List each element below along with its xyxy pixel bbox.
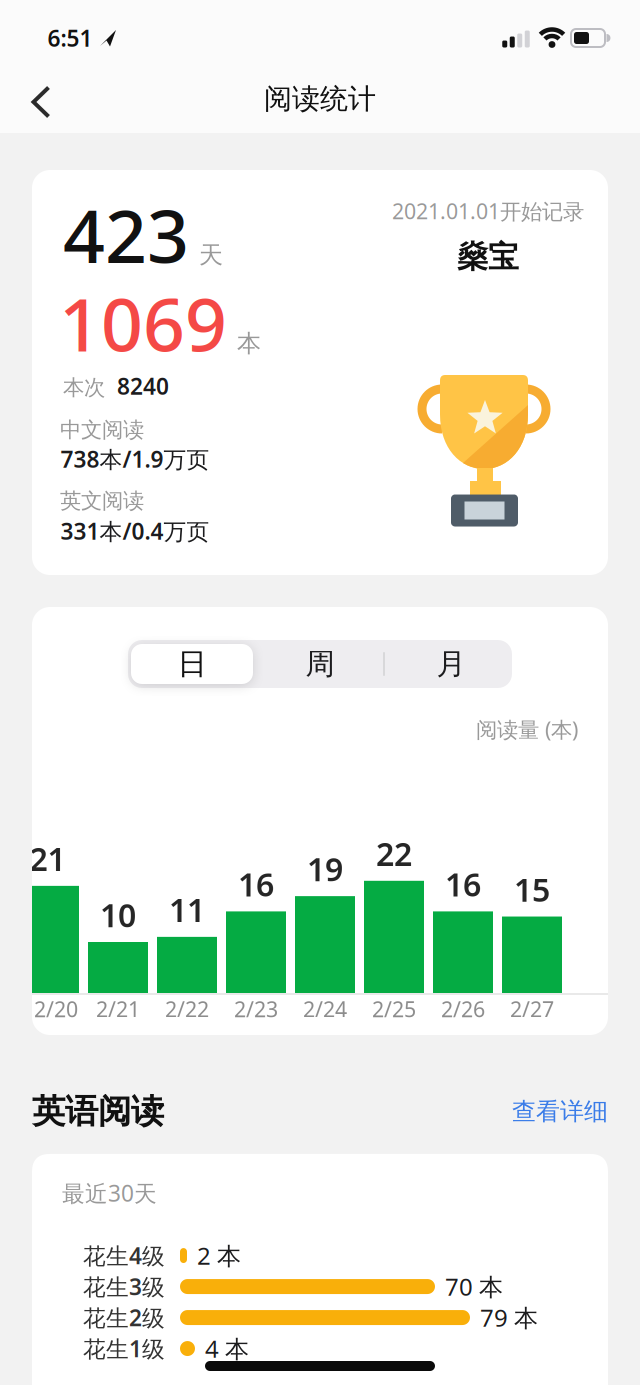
staticText: 2 本 xyxy=(197,1240,241,1271)
staticText: 周 xyxy=(305,646,334,682)
staticText: 花生2级 xyxy=(83,1302,165,1333)
staticText: 花生1级 xyxy=(83,1333,165,1364)
staticText: 2/25 xyxy=(372,995,416,1023)
staticText: 331本/0.4万页 xyxy=(60,516,209,546)
staticText: 最近30天 xyxy=(62,1178,157,1208)
staticText: 19 xyxy=(307,848,343,890)
staticText: 日 xyxy=(177,646,206,682)
staticText: 英语阅读 xyxy=(32,1091,164,1132)
staticText: 79 本 xyxy=(480,1302,538,1333)
button[interactable]: 月 xyxy=(401,642,501,686)
staticText: 花生4级 xyxy=(83,1240,165,1271)
staticText: 2/27 xyxy=(510,995,554,1023)
staticText: 阅读统计 xyxy=(264,82,376,116)
staticText: 70 本 xyxy=(445,1271,503,1302)
button[interactable]: 周 xyxy=(270,642,370,686)
button[interactable]: Back xyxy=(19,77,62,126)
staticText: 查看详细 xyxy=(512,1097,608,1126)
button[interactable]: 日 xyxy=(128,644,253,684)
staticText: 10 xyxy=(100,893,136,936)
staticText: 2/20 xyxy=(34,995,78,1023)
staticText: 16 xyxy=(445,863,481,905)
staticText: 11 xyxy=(169,888,205,931)
staticText: 2/23 xyxy=(234,995,278,1023)
staticText: 15 xyxy=(514,868,550,910)
staticText: 1069 xyxy=(59,274,227,372)
staticText: 2/21 xyxy=(96,995,140,1023)
staticText: 英文阅读 xyxy=(60,488,144,514)
staticText: 8240 xyxy=(117,371,169,401)
staticText: 2021.01.01开始记录 xyxy=(392,197,584,225)
staticText: 16 xyxy=(238,863,274,905)
staticText: 燊宝 xyxy=(457,238,519,276)
staticText: 天 xyxy=(199,240,223,270)
staticText: 月 xyxy=(436,646,465,682)
staticText: 2/26 xyxy=(441,995,485,1023)
staticText: 2/22 xyxy=(165,995,209,1023)
staticText: 2/24 xyxy=(303,995,347,1023)
staticText: 423 xyxy=(63,186,189,283)
button[interactable]: 查看详细 xyxy=(512,1097,608,1126)
staticText: 738本/1.9万页 xyxy=(60,444,209,474)
staticText: 本 xyxy=(237,329,261,358)
staticText: 阅读量 (本) xyxy=(476,715,578,743)
staticText: 花生3级 xyxy=(83,1271,165,1302)
staticText: 6:51 xyxy=(47,23,92,53)
staticText: 21 xyxy=(29,837,65,880)
staticText: 本次 xyxy=(63,375,105,401)
staticText: 22 xyxy=(376,832,412,875)
staticText: 4 本 xyxy=(205,1333,249,1364)
staticText: 中文阅读 xyxy=(60,417,144,443)
